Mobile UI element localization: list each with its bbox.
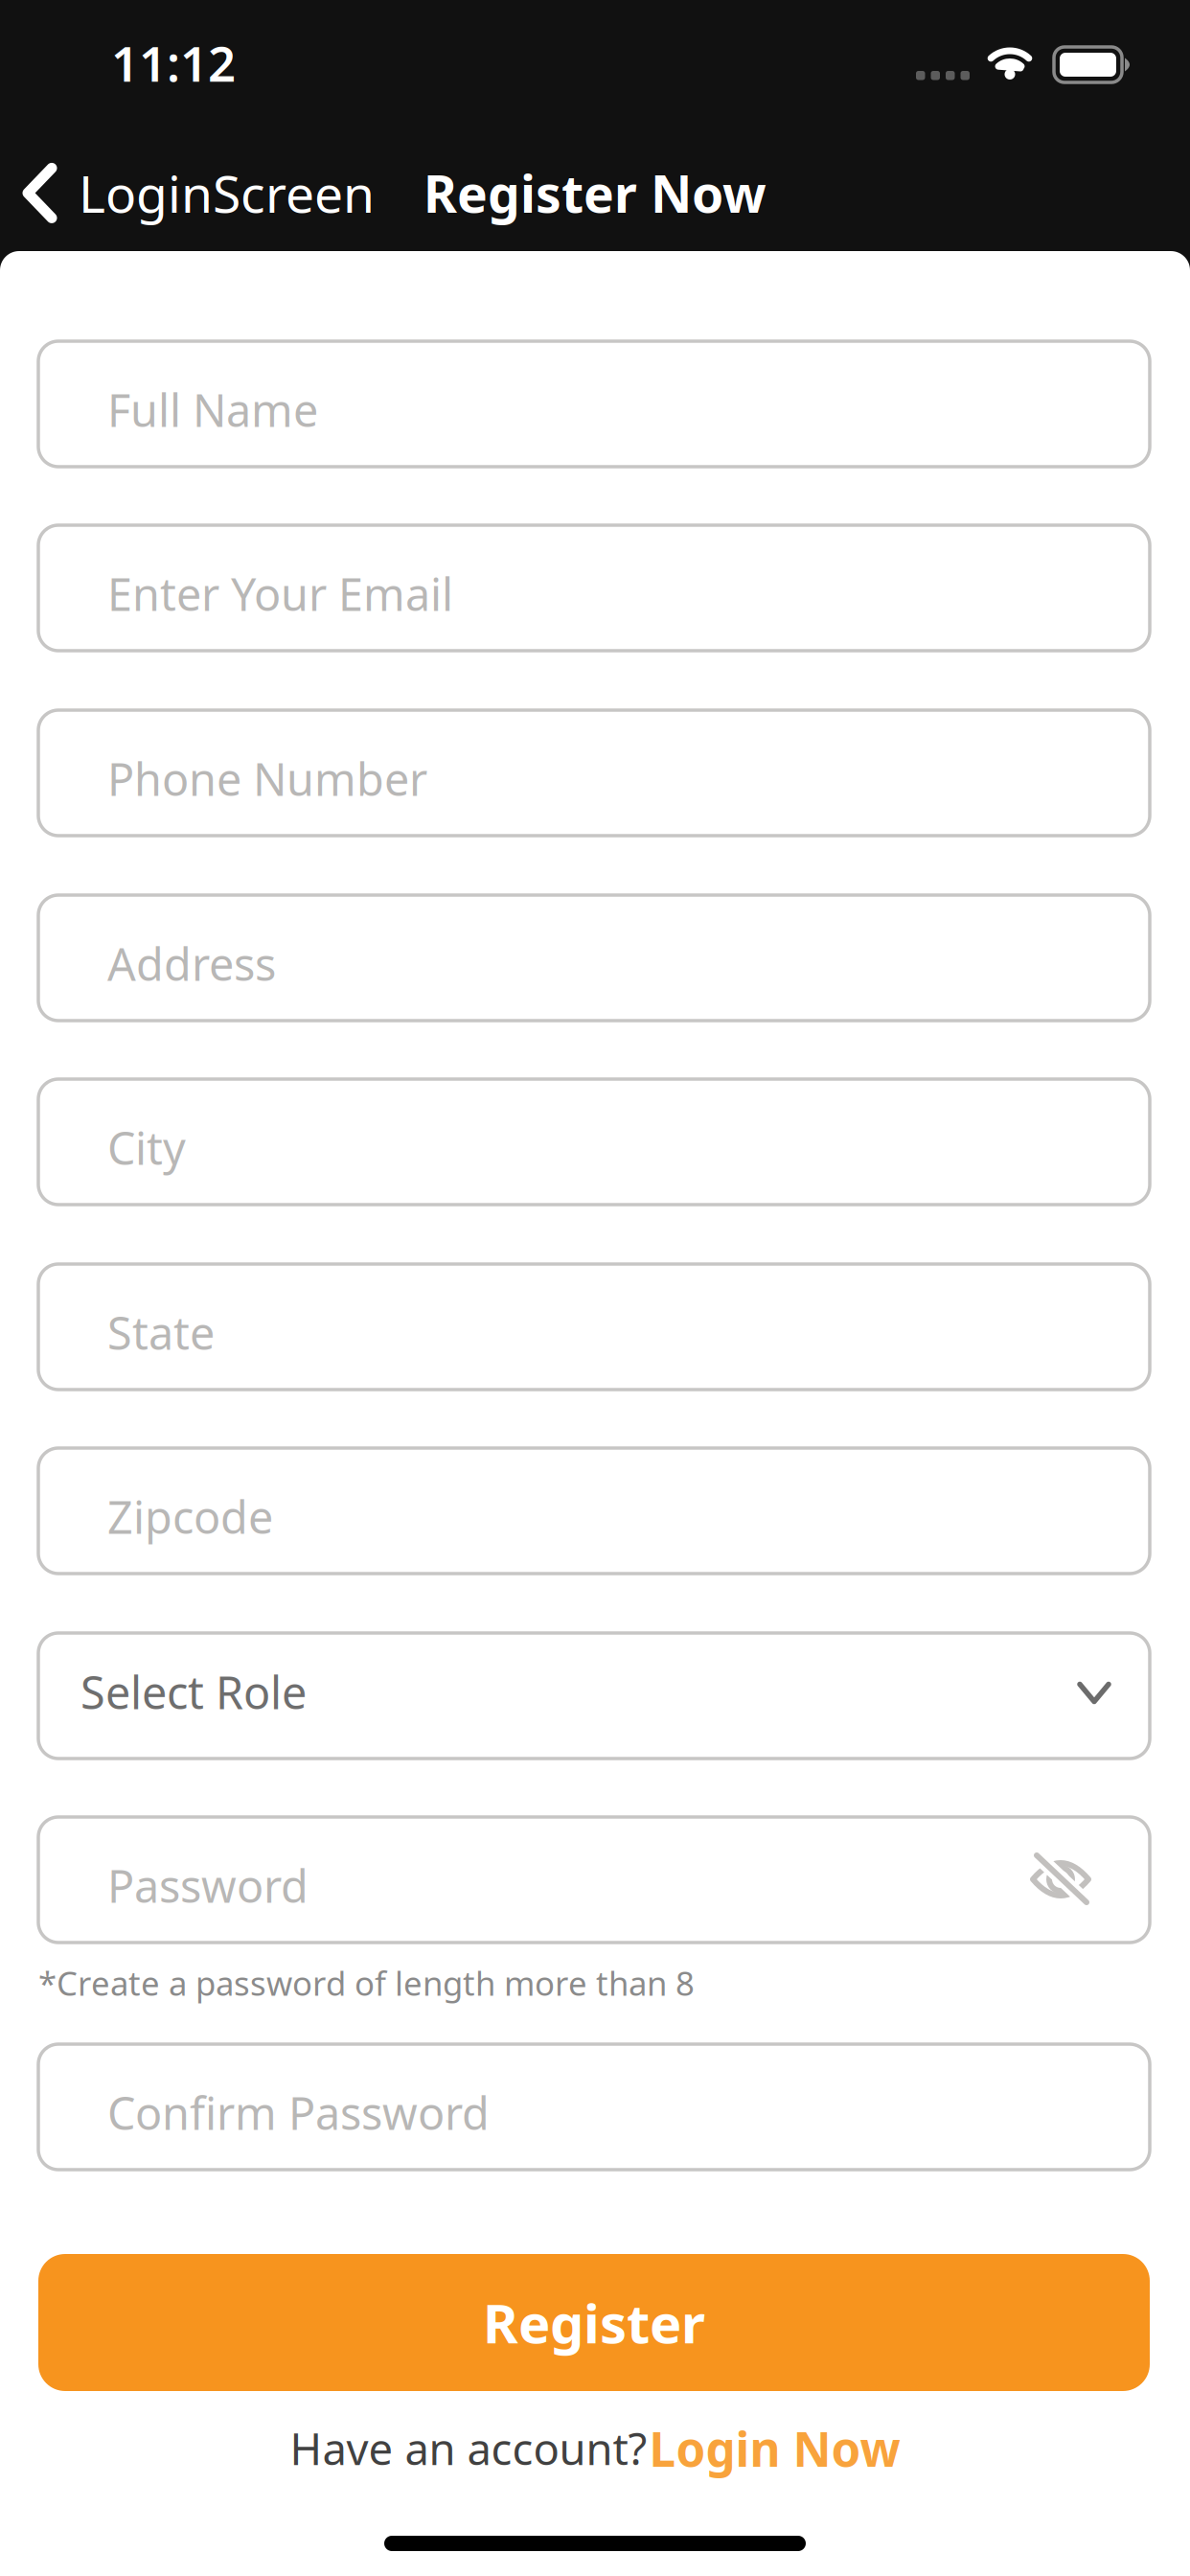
button[interactable]: Register bbox=[38, 2254, 1150, 2391]
staticText: Select Role bbox=[80, 1662, 307, 1722]
staticText: Register Now bbox=[423, 159, 767, 227]
staticText: Zipcode bbox=[107, 1487, 273, 1546]
staticText: Login Now bbox=[649, 2417, 900, 2480]
staticText: *Create a password of length more than 8 bbox=[38, 1961, 695, 2005]
staticText: 11:12 bbox=[111, 31, 236, 95]
staticText: Confirm Password bbox=[107, 2083, 490, 2142]
staticText: City bbox=[107, 1118, 186, 1177]
staticText: Phone Number bbox=[107, 749, 427, 808]
button[interactable]: Back bbox=[23, 159, 375, 227]
button[interactable]: Login Now bbox=[649, 2417, 900, 2480]
staticText: Register bbox=[483, 2287, 705, 2358]
staticText: Enter Your Email bbox=[107, 564, 453, 623]
staticText: Address bbox=[107, 934, 276, 993]
staticText: Full Name bbox=[107, 380, 318, 439]
staticText: State bbox=[107, 1303, 215, 1362]
button[interactable]: Show password bbox=[1030, 1854, 1091, 1904]
button[interactable]: Select Role bbox=[38, 1633, 1150, 1759]
staticText: LoginScreen bbox=[79, 159, 375, 227]
staticText: Password bbox=[107, 1856, 309, 1915]
staticText: Have an account? bbox=[290, 2420, 647, 2477]
